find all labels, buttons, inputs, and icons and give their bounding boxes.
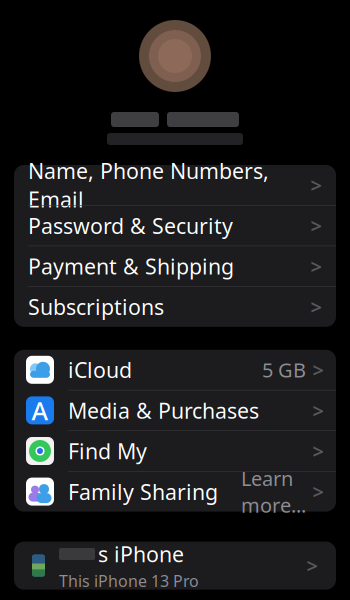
staticText: s iPhone: [98, 540, 184, 568]
staticText: Media & Purchases: [68, 396, 259, 424]
staticText: This iPhone 13 Pro: [59, 570, 199, 591]
staticText: >: [312, 478, 323, 505]
button[interactable]: Name, Phone Numbers, Email: [14, 165, 336, 205]
button[interactable]: A: [14, 390, 336, 430]
staticText: Payment & Shipping: [28, 252, 234, 280]
staticText: >: [310, 172, 321, 198]
button[interactable]: Subscriptions: [14, 287, 336, 327]
button[interactable]: iCloud: [14, 350, 336, 390]
staticText: >: [312, 438, 323, 464]
staticText: iCloud: [68, 356, 132, 384]
staticText: >: [310, 293, 321, 320]
staticText: >: [312, 356, 323, 383]
staticText: 5 GB: [262, 356, 306, 383]
button[interactable]: s iPhone: [14, 542, 336, 590]
button[interactable]: [0, 0, 350, 145]
staticText: Find My: [68, 437, 147, 465]
staticText: Subscriptions: [28, 293, 164, 321]
button[interactable]: Family Sharing: [14, 472, 336, 512]
staticText: Learn more...: [241, 465, 306, 518]
staticText: Name, Phone Numbers, Email: [28, 157, 269, 213]
staticText: >: [310, 253, 321, 279]
staticText: Password & Security: [28, 211, 233, 240]
staticText: Family Sharing: [68, 477, 218, 506]
staticText: >: [312, 397, 323, 424]
staticText: >: [310, 212, 321, 239]
staticText: A: [31, 394, 48, 427]
staticText: >: [306, 552, 317, 579]
button[interactable]: Payment & Shipping: [14, 246, 336, 286]
button[interactable]: Password & Security: [14, 206, 336, 246]
button[interactable]: Find My: [14, 431, 336, 471]
